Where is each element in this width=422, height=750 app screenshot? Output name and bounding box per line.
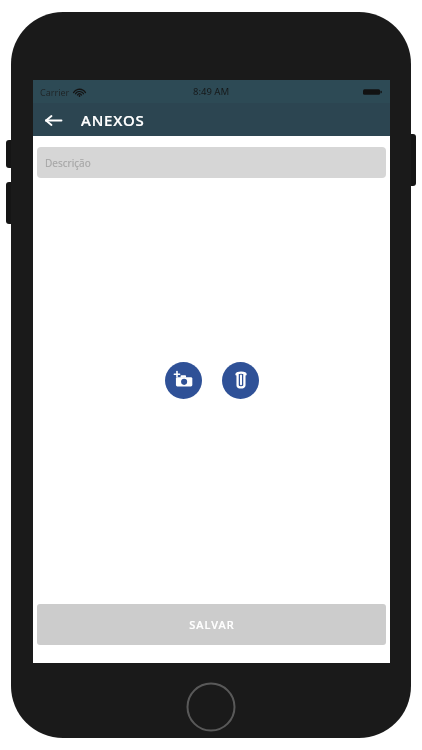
staticText: Descrição [45, 156, 91, 170]
staticText: 8:49 AM [193, 85, 230, 98]
button[interactable]: SALVAR [37, 604, 386, 645]
staticText: Carrier [40, 86, 70, 98]
button[interactable]: Take photo [165, 362, 202, 399]
button[interactable]: Back [39, 106, 67, 134]
button[interactable]: Attach file [222, 362, 259, 399]
staticText: ANEXOS [81, 110, 145, 130]
button[interactable]: Descrição [37, 147, 386, 178]
staticText: SALVAR [189, 617, 235, 632]
